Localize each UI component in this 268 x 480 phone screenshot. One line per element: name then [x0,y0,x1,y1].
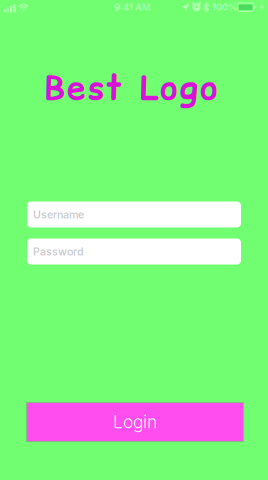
staticText: Username [33,208,84,221]
button[interactable]: Username [27,201,241,227]
staticText: Best Logo [44,64,218,110]
staticText: Password [33,245,84,258]
button[interactable]: Login [27,403,243,441]
staticText: 9:41 AM [114,2,151,13]
button[interactable]: Password [27,238,241,264]
staticText: 100% [212,2,237,13]
staticText: Login [113,411,157,432]
